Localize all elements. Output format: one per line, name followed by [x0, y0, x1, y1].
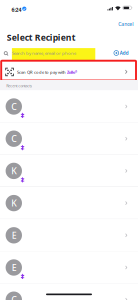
button[interactable]: Contact C [0, 284, 138, 300]
button[interactable]: Contact E [0, 219, 138, 251]
staticText: C [11, 101, 17, 112]
staticText: ® [75, 70, 77, 74]
staticText: C [11, 133, 17, 145]
button[interactable]: Contact K [0, 155, 138, 187]
staticText: E [12, 262, 17, 273]
staticText: Add [120, 50, 129, 56]
button[interactable]: Contact C [0, 90, 138, 123]
staticText: 6:24 [12, 6, 22, 13]
button[interactable]: Contact K [0, 187, 138, 219]
staticText: Select Recipient [7, 32, 76, 43]
staticText: C [11, 294, 17, 300]
staticText: K [11, 197, 17, 209]
button[interactable]: Add [114, 48, 129, 57]
staticText: Scan QR code to pay with [17, 69, 67, 75]
staticText: Zelle [67, 69, 75, 75]
button[interactable]: Cancel [113, 20, 133, 29]
button[interactable]: Scan QR code to pay with [0, 61, 138, 80]
staticText: Recent contacts [6, 83, 32, 88]
staticText: Cancel [118, 21, 133, 27]
staticText: E [12, 229, 17, 241]
button[interactable]: Contact E [0, 251, 138, 284]
button[interactable]: Contact C [0, 123, 138, 155]
staticText: K [11, 165, 17, 177]
staticText: Search by name, email or phone [12, 50, 76, 56]
